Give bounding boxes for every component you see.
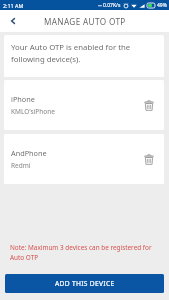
button[interactable]: Back xyxy=(0,10,26,32)
staticText: MANAGE AUTO OTP xyxy=(44,16,126,27)
staticText: iPhone xyxy=(11,94,35,104)
button[interactable]: iPhone xyxy=(4,80,164,130)
staticText: 49% xyxy=(157,2,167,9)
staticText: Redmi xyxy=(11,161,31,170)
staticText: ADD THIS DEVICE xyxy=(55,279,115,288)
staticText: 2:11 AM xyxy=(3,2,24,9)
staticText: Your Auto OTP is enabled for the followi… xyxy=(11,42,150,65)
staticText: Note: Maximum 3 devices can be registere… xyxy=(10,243,161,262)
staticText: 0.07K/s xyxy=(103,2,121,9)
button[interactable]: ADD THIS DEVICE xyxy=(5,274,164,293)
button[interactable]: AndPhone xyxy=(4,134,164,184)
staticText: AndPhone xyxy=(11,148,47,158)
button[interactable]: Delete iPhone xyxy=(140,96,158,114)
staticText: KMLO'siPhone xyxy=(11,107,55,116)
button[interactable]: Delete AndPhone xyxy=(140,150,158,168)
